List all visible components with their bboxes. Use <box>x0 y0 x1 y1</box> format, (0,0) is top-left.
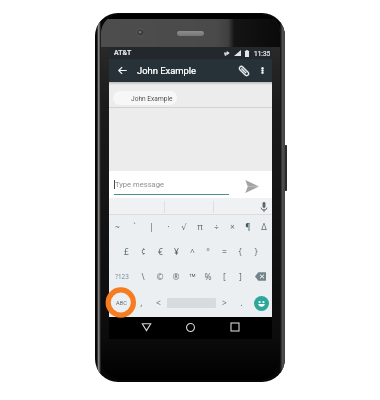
staticText: } <box>254 246 258 258</box>
staticText: ÷ <box>214 221 219 233</box>
staticText: ¢ <box>141 246 146 258</box>
staticText: John Example <box>137 65 197 76</box>
staticText: £ <box>124 246 129 258</box>
button[interactable]: © <box>151 264 168 289</box>
button[interactable]: % <box>200 264 216 289</box>
staticText: π <box>197 221 203 233</box>
button[interactable]: ?123 <box>109 264 134 289</box>
staticText: AT&T <box>114 49 132 57</box>
button[interactable]: ™ <box>184 264 200 289</box>
button[interactable]: ¢ <box>135 239 152 264</box>
button[interactable]: Delete <box>248 264 272 289</box>
staticText: ™ <box>189 271 196 283</box>
button[interactable]: \ <box>134 264 151 289</box>
staticText: ¥ <box>174 246 179 258</box>
button[interactable]: ABC <box>109 289 133 317</box>
staticText: ?123 <box>115 272 129 281</box>
button[interactable]: ¶ <box>240 214 256 239</box>
button[interactable]: Emoji <box>250 289 272 317</box>
button[interactable]: ÷ <box>208 214 224 239</box>
staticText: Δ <box>261 221 267 233</box>
button[interactable]: ° <box>200 239 216 264</box>
staticText: € <box>158 246 163 258</box>
button[interactable]: John Example <box>113 91 177 105</box>
staticText: . <box>240 297 243 309</box>
button[interactable]: € <box>152 239 168 264</box>
button[interactable]: Voice input <box>256 199 272 215</box>
button[interactable]: · <box>160 214 176 239</box>
button[interactable]: ¥ <box>168 239 184 264</box>
button[interactable]: , <box>133 289 150 317</box>
staticText: ® <box>172 271 180 283</box>
staticText: 11:35 <box>254 50 271 58</box>
staticText: ABC <box>116 300 127 307</box>
button[interactable]: Attach file <box>234 61 254 81</box>
staticText: · <box>167 221 170 233</box>
button[interactable]: } <box>248 239 264 264</box>
staticText: × <box>230 221 235 233</box>
button[interactable]: ^ <box>184 239 200 264</box>
staticText: = <box>222 246 227 258</box>
staticText: John Example <box>131 95 173 103</box>
staticText: { <box>238 246 242 258</box>
staticText: > <box>222 297 227 309</box>
button[interactable]: | <box>143 214 160 239</box>
button[interactable]: < <box>150 289 167 317</box>
button[interactable]: × <box>224 214 240 239</box>
button[interactable]: Send <box>240 174 264 198</box>
staticText: ] <box>239 271 242 283</box>
staticText: , <box>140 297 143 309</box>
button[interactable]: ] <box>232 264 248 289</box>
staticText: [ <box>223 271 226 283</box>
staticText: ` <box>133 221 136 233</box>
button[interactable]: π <box>192 214 208 239</box>
staticText: % <box>204 271 212 283</box>
button[interactable]: Type message <box>115 180 164 189</box>
button[interactable]: ` <box>126 214 143 239</box>
button[interactable]: Recent apps <box>224 317 246 339</box>
button[interactable]: ~ <box>109 214 126 239</box>
staticText: ~ <box>115 221 120 233</box>
button[interactable]: Home <box>179 317 201 339</box>
button[interactable]: Back <box>135 317 157 339</box>
button[interactable]: [ <box>216 264 232 289</box>
button[interactable]: . <box>233 289 250 317</box>
staticText: ¶ <box>245 221 251 233</box>
button[interactable]: More options <box>253 61 271 79</box>
button[interactable]: √ <box>176 214 192 239</box>
staticText: √ <box>181 222 187 232</box>
button[interactable]: Back <box>113 61 132 80</box>
button[interactable]: £ <box>118 239 135 264</box>
button[interactable]: ® <box>168 264 184 289</box>
staticText: | <box>149 221 154 233</box>
button[interactable]: = <box>216 239 232 264</box>
button[interactable]: Δ <box>256 214 272 239</box>
staticText: © <box>156 271 164 283</box>
button[interactable]: > <box>216 289 233 317</box>
staticText: ° <box>206 246 210 258</box>
staticText: < <box>156 297 161 309</box>
staticText: \ <box>141 271 145 283</box>
button[interactable]: { <box>232 239 248 264</box>
staticText: ^ <box>190 246 195 258</box>
